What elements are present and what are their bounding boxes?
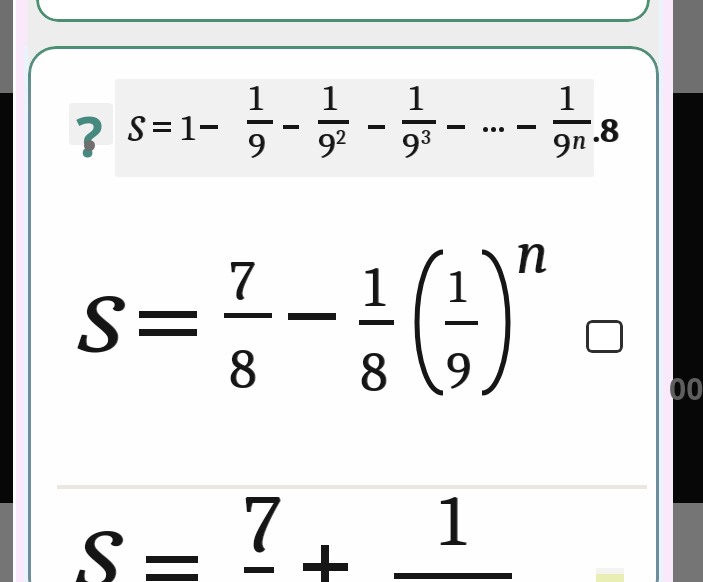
staticText: 7	[243, 478, 282, 572]
staticText: 1	[409, 78, 423, 119]
staticText: 1	[250, 78, 264, 119]
staticText: 1	[439, 480, 466, 563]
staticText: S	[128, 108, 144, 151]
staticText: 1	[249, 78, 263, 119]
staticText: 1	[440, 480, 467, 563]
staticText: 3	[421, 126, 431, 149]
button[interactable]	[115, 79, 594, 177]
staticText: 9	[249, 126, 267, 167]
staticText: 9	[402, 126, 420, 167]
staticText: 3	[422, 126, 432, 149]
staticText: 1	[323, 78, 337, 119]
staticText: 1	[182, 108, 196, 149]
staticText: 1	[365, 256, 386, 320]
staticText: 8	[230, 338, 258, 402]
staticText: 7	[229, 250, 256, 314]
staticText: 1	[561, 78, 575, 119]
staticText: 8	[361, 341, 389, 405]
staticText: .8	[593, 111, 620, 150]
staticText: S	[79, 276, 122, 373]
staticText: S	[76, 511, 119, 582]
button[interactable]	[586, 320, 623, 353]
staticText: 9	[318, 126, 336, 167]
staticText: 1	[181, 108, 195, 149]
staticText: 9	[248, 126, 266, 167]
button[interactable]	[40, 492, 640, 582]
staticText: 9	[403, 126, 421, 167]
staticText: S	[78, 276, 121, 373]
staticText: n	[573, 126, 587, 156]
staticText: 1	[364, 256, 385, 320]
staticText: 00	[669, 368, 703, 409]
staticText: 7	[244, 478, 283, 572]
staticText: 8	[229, 338, 257, 402]
staticText: 2	[337, 126, 347, 149]
button[interactable]	[40, 220, 640, 430]
staticText: n	[517, 219, 549, 288]
staticText: 9	[446, 341, 471, 401]
staticText: 8	[360, 341, 388, 405]
staticText: 9	[319, 126, 337, 167]
staticText: 9	[554, 126, 572, 167]
staticText: 7	[230, 250, 257, 314]
staticText: 1	[560, 78, 574, 119]
staticText: 1	[449, 261, 466, 313]
staticText: ?	[76, 97, 103, 173]
staticText: .8	[592, 111, 619, 150]
staticText: 9	[553, 126, 571, 167]
staticText: 1	[450, 261, 467, 313]
staticText: 1	[324, 78, 338, 119]
staticText: n	[516, 219, 548, 288]
staticText: n	[572, 126, 586, 156]
staticText: 2	[336, 126, 346, 149]
staticText: S	[77, 511, 120, 582]
staticText: 9	[447, 341, 472, 401]
staticText: 1	[410, 78, 424, 119]
staticText: S	[129, 108, 145, 151]
